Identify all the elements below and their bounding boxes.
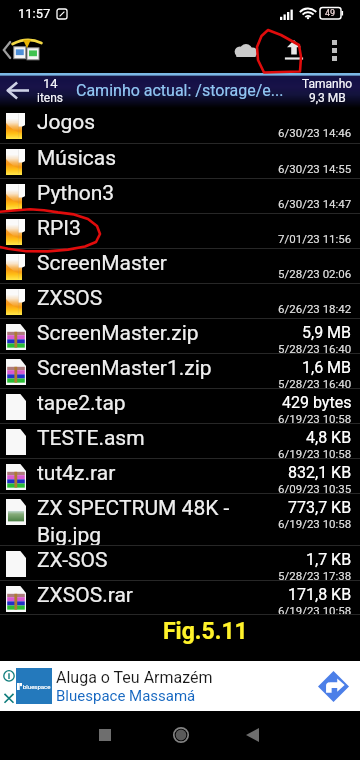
staticText: 5/28/23 02:06: [278, 267, 352, 280]
staticText: Python3: [37, 181, 115, 206]
button[interactable]: ZXSOS.rar: [0, 581, 360, 614]
button[interactable]: ZXSOS: [0, 284, 360, 318]
staticText: 6/30/23 14:55: [278, 162, 352, 175]
staticText: 1,7 KB: [306, 550, 352, 569]
button[interactable]: Jogos: [0, 108, 360, 143]
staticText: ScreenMaster.zip: [37, 321, 199, 346]
staticText: 5,9 MB: [302, 323, 352, 342]
button[interactable]: Open advertisement: [318, 671, 349, 702]
staticText: ZX-SOS: [37, 548, 108, 573]
button[interactable]: Cloud: [224, 27, 268, 73]
staticText: 11:57: [18, 6, 51, 21]
staticText: 171,8 KB: [288, 585, 352, 604]
button[interactable]: ScreenMaster: [0, 249, 360, 283]
staticText: Tamanho: [302, 77, 353, 91]
button[interactable]: More options: [316, 27, 352, 73]
staticText: 6/19/23 10:58: [278, 604, 352, 614]
staticText: ZXSOS.rar: [37, 583, 133, 608]
button[interactable]: Navigate up: [0, 27, 48, 73]
staticText: Jogos: [37, 110, 96, 135]
button[interactable]: Upload: [272, 27, 316, 73]
button[interactable]: ScreenMaster1.zip: [0, 354, 360, 388]
staticText: tape2.tap: [37, 391, 126, 416]
staticText: Músicas: [37, 146, 117, 171]
staticText: 6/09/23 10:35: [278, 482, 352, 493]
button[interactable]: Home: [157, 711, 205, 759]
button[interactable]: tape2.tap: [0, 389, 360, 423]
button[interactable]: ZX-SOS: [0, 546, 360, 580]
staticText: bluespace: [23, 683, 51, 690]
staticText: 14: [43, 76, 58, 91]
staticText: 1,6 MB: [302, 358, 352, 377]
staticText: 49: [325, 8, 336, 19]
staticText: itens: [37, 91, 64, 105]
staticText: Fig.5.11: [163, 618, 248, 645]
staticText: 6/19/23 10:58: [278, 412, 352, 423]
staticText: 5/28/23 16:40: [278, 342, 352, 353]
button[interactable]: ZX SPECTRUM 48K - Big.jpg: [0, 494, 360, 545]
staticText: 7/01/23 11:56: [278, 232, 352, 245]
staticText: 429 bytes: [282, 393, 352, 412]
staticText: Bluespace Massamá: [56, 687, 196, 705]
button[interactable]: Músicas: [0, 144, 360, 178]
staticText: 6/26/23 18:42: [278, 302, 352, 315]
staticText: Aluga o Teu Armazém: [56, 668, 213, 687]
staticText: RPI3: [37, 216, 81, 241]
staticText: 832,1 KB: [288, 463, 352, 482]
staticText: TESTE.asm: [37, 426, 145, 451]
staticText: tut4z.rar: [37, 461, 116, 486]
staticText: 6/30/23 14:46: [278, 126, 352, 139]
staticText: ScreenMaster1.zip: [37, 356, 212, 381]
staticText: 9,3 MB: [309, 91, 346, 105]
button[interactable]: TESTE.asm: [0, 424, 360, 458]
button[interactable]: Recent apps: [81, 711, 129, 759]
staticText: Caminho actual: /storage/e...: [76, 81, 302, 100]
button[interactable]: Python3: [0, 179, 360, 213]
staticText: 5/28/23 17:38: [278, 569, 352, 580]
staticText: 4,8 KB: [306, 428, 352, 447]
staticText: 5/28/23 16:40: [278, 377, 352, 388]
staticText: ZX SPECTRUM 48K - Big.jpg: [37, 496, 277, 545]
staticText: 6/19/23 10:58: [278, 447, 352, 458]
button[interactable]: ScreenMaster.zip: [0, 319, 360, 353]
staticText: ScreenMaster: [37, 251, 167, 276]
button[interactable]: RPI3: [0, 214, 360, 248]
staticText: 773,7 KB: [288, 498, 352, 517]
staticText: 6/30/23 14:47: [278, 197, 352, 210]
staticText: ZXSOS: [37, 286, 103, 311]
button[interactable]: Back: [228, 711, 276, 759]
button[interactable]: tut4z.rar: [0, 459, 360, 493]
staticText: 6/19/23 10:58: [278, 517, 352, 530]
